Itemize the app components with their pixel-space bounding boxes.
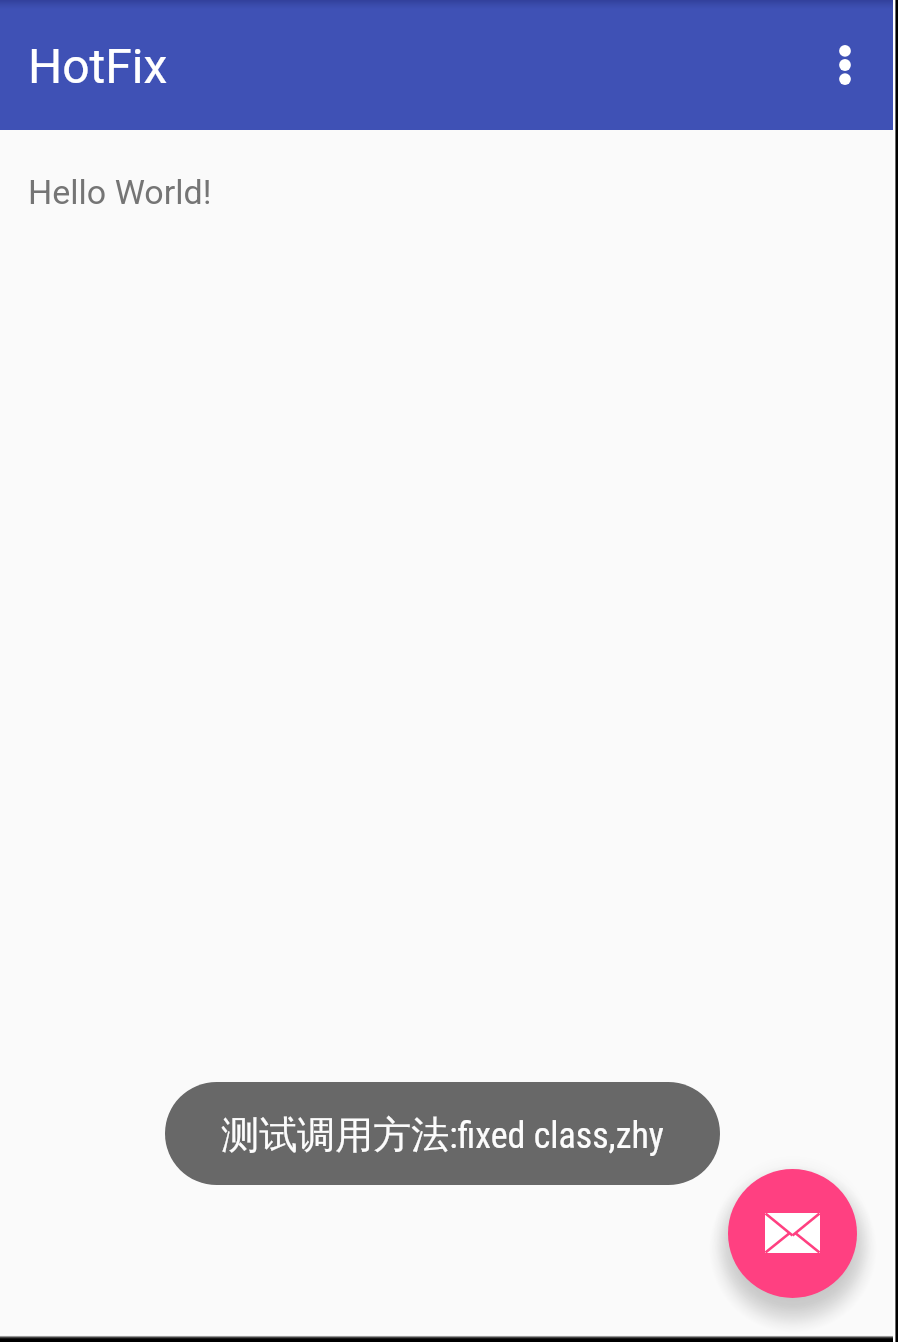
staticText: 测试调用方法:fixed class,zhy: [221, 1111, 664, 1159]
staticText: Hello World!: [28, 172, 212, 212]
button[interactable]: More options: [809, 29, 881, 101]
button[interactable]: Compose email: [728, 1169, 857, 1298]
staticText: HotFix: [28, 38, 168, 94]
